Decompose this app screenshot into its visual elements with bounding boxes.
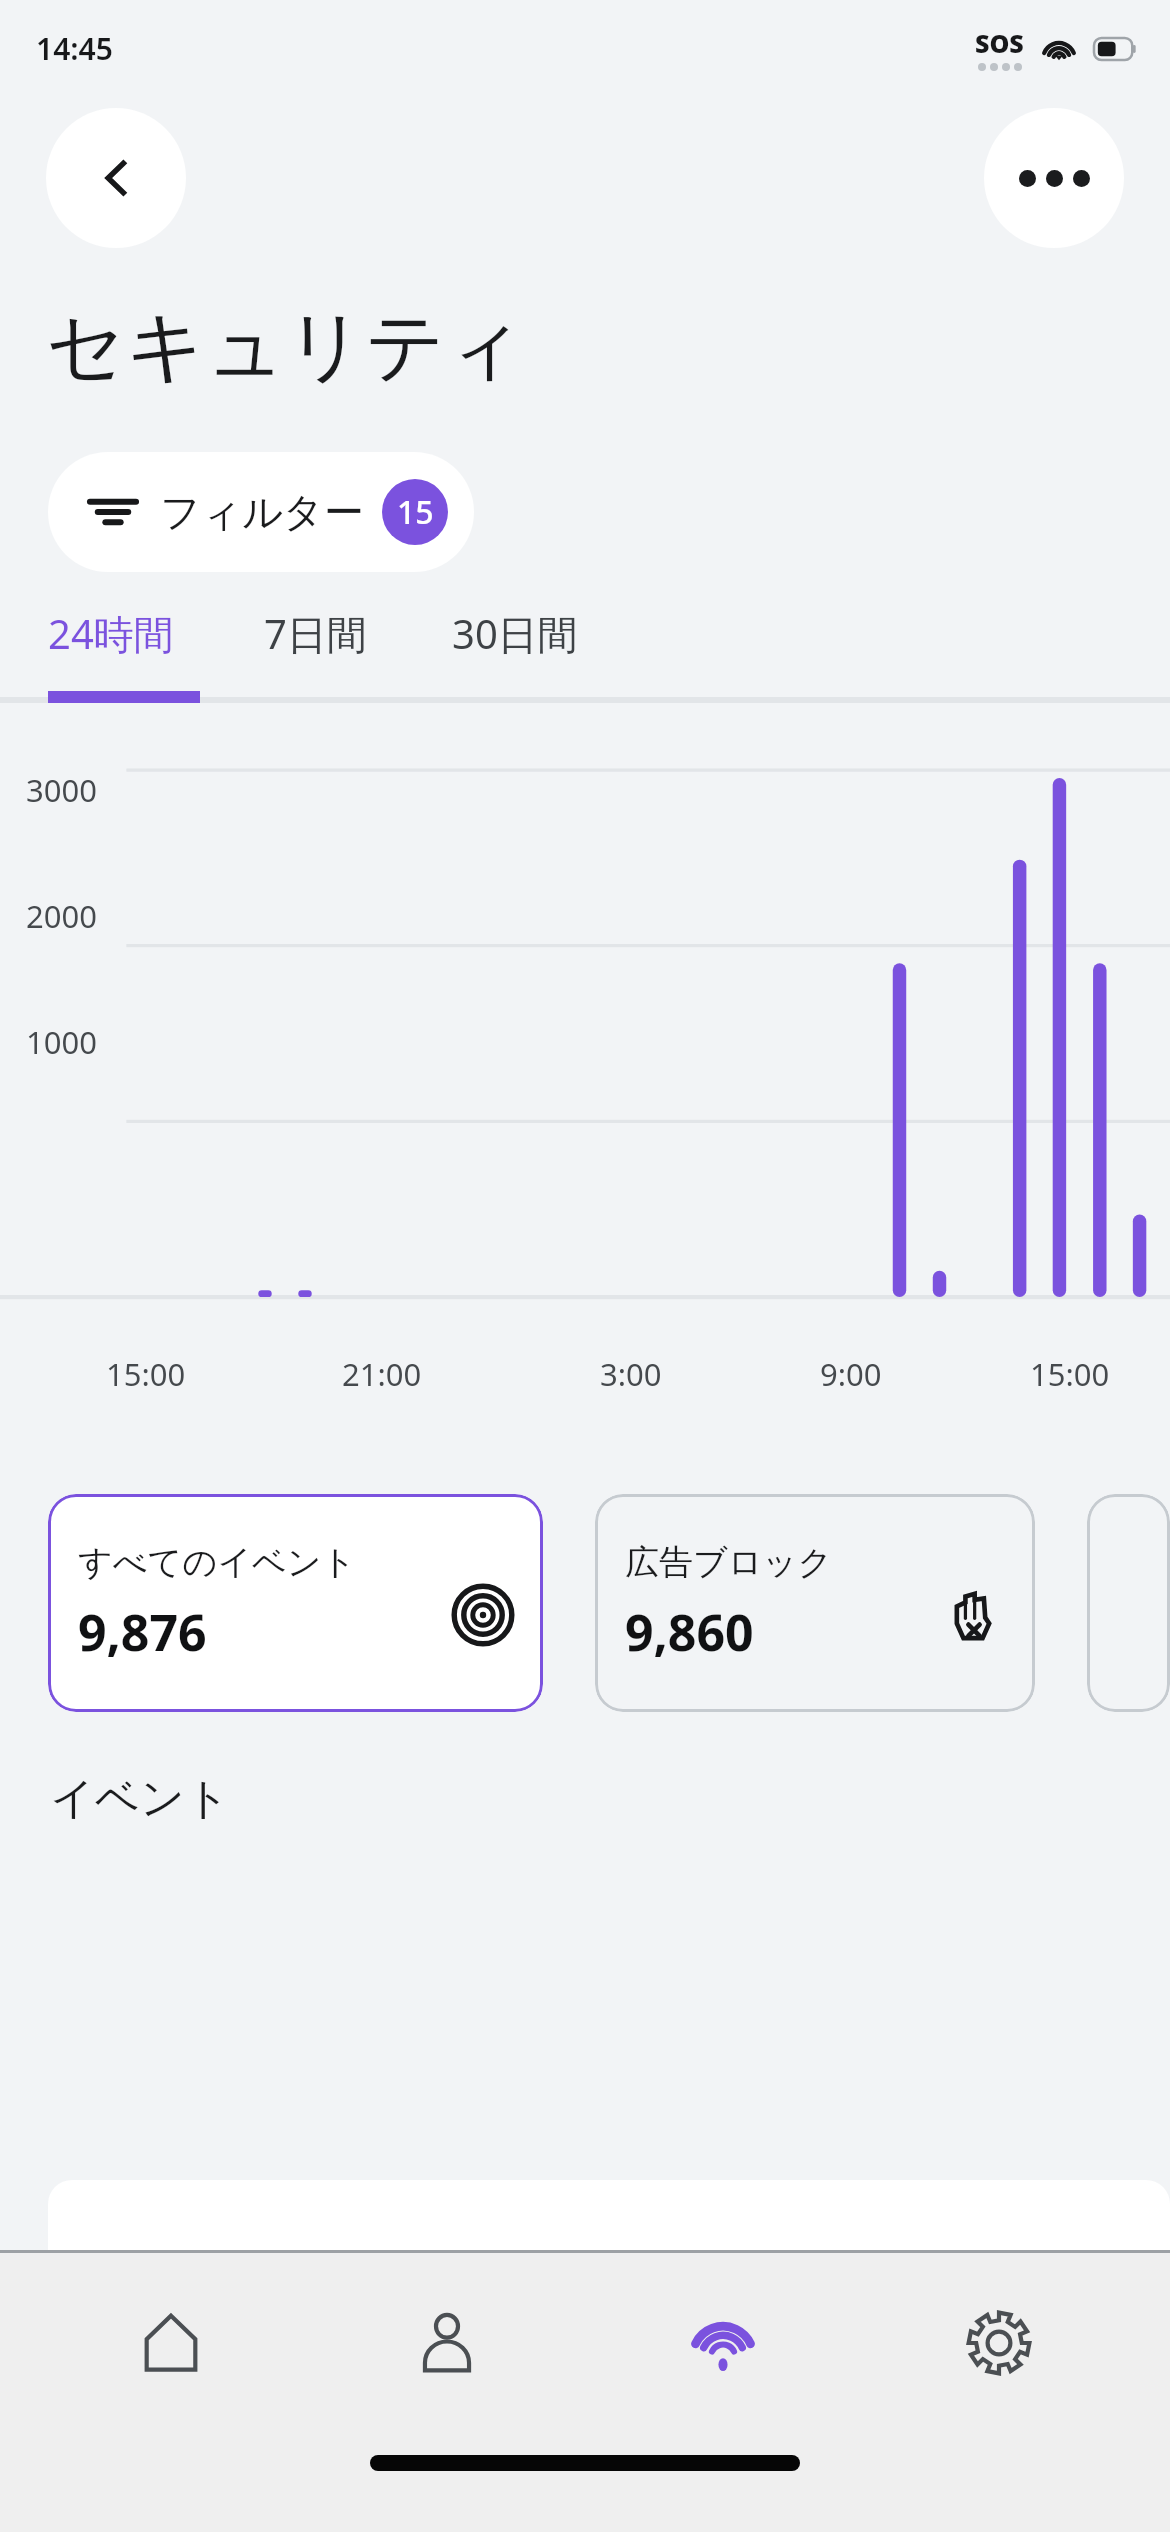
button[interactable]: 7日間 — [264, 585, 388, 681]
button[interactable]: Home — [66, 2253, 276, 2433]
button[interactable]: 30日間 — [452, 585, 604, 681]
button[interactable]: Network — [618, 2253, 828, 2433]
staticText: 2000 — [26, 895, 97, 937]
staticText: セキュリティ — [46, 298, 525, 396]
staticText: 1000 — [26, 1021, 97, 1063]
button[interactable]: Profile — [342, 2253, 552, 2433]
staticText: フィルター — [160, 487, 364, 537]
button[interactable] — [1087, 1494, 1170, 1712]
staticText: すべてのイベント — [78, 1541, 357, 1584]
button[interactable]: フィルター — [48, 452, 474, 572]
button[interactable]: 24時間 — [48, 585, 200, 681]
staticText: 7日間 — [264, 606, 367, 661]
staticText: 9,860 — [625, 1598, 754, 1666]
staticText: 30日間 — [452, 606, 578, 661]
staticText: SOS — [975, 26, 1024, 60]
button[interactable]: Settings — [894, 2253, 1104, 2433]
staticText: 3:00 — [600, 1353, 662, 1395]
button[interactable]: Back — [46, 108, 186, 248]
button[interactable]: すべてのイベント — [48, 1494, 543, 1712]
staticText: 15 — [397, 490, 434, 534]
staticText: 広告ブロック — [625, 1541, 833, 1584]
button[interactable]: More options — [984, 108, 1124, 248]
staticText: 24時間 — [48, 606, 174, 661]
staticText: 9:00 — [820, 1353, 882, 1395]
staticText: 15:00 — [1030, 1353, 1110, 1395]
staticText: イベント — [50, 1771, 231, 1826]
button[interactable]: 広告ブロック — [595, 1494, 1035, 1712]
staticText: 21:00 — [342, 1353, 422, 1395]
staticText: 15:00 — [106, 1353, 186, 1395]
staticText: 9,876 — [78, 1598, 207, 1666]
staticText: 3000 — [26, 769, 97, 811]
staticText: 14:45 — [36, 28, 113, 69]
